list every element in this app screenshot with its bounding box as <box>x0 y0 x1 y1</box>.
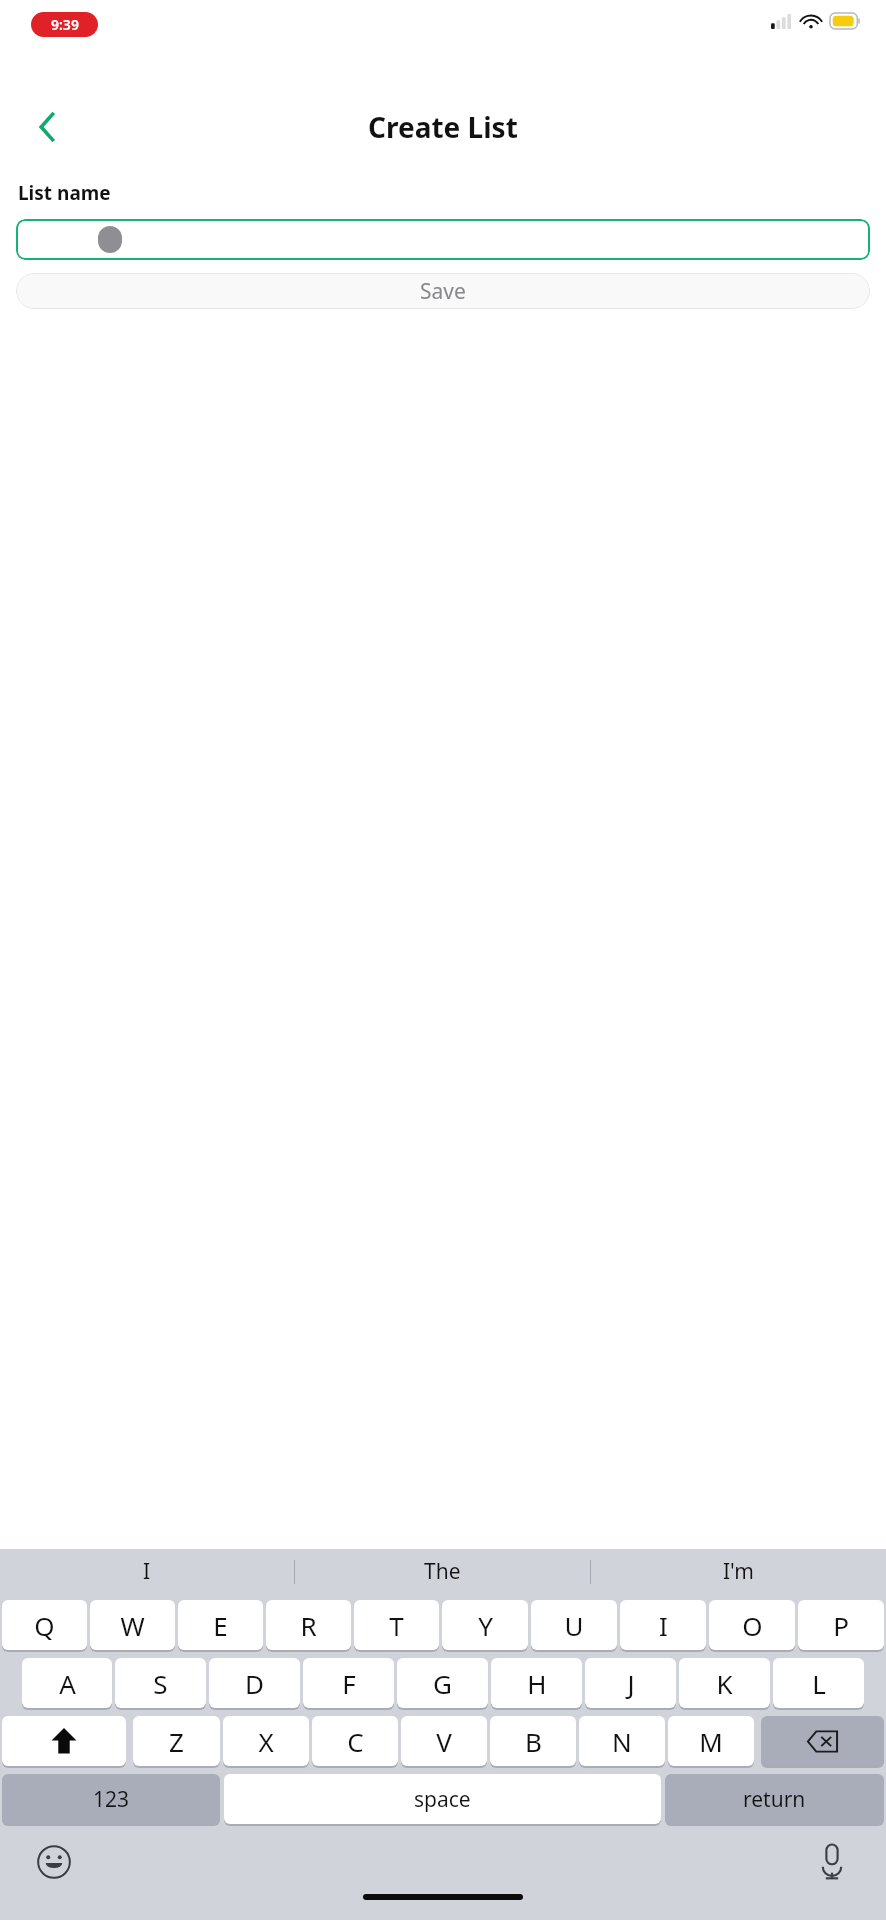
button[interactable]: Save <box>16 273 870 309</box>
button[interactable]: L <box>773 1658 864 1708</box>
staticText: I <box>143 1557 151 1586</box>
staticText: Save <box>420 277 466 306</box>
staticText: Q <box>34 1608 55 1643</box>
button[interactable]: B <box>490 1716 576 1766</box>
button[interactable]: F <box>303 1658 394 1708</box>
staticText: E <box>213 1608 228 1643</box>
staticText: V <box>436 1724 452 1759</box>
button[interactable]: List name input <box>16 219 870 260</box>
button[interactable]: O <box>709 1600 795 1650</box>
staticText: D <box>245 1666 264 1701</box>
staticText: Y <box>478 1608 493 1643</box>
button[interactable]: H <box>491 1658 582 1708</box>
staticText: space <box>414 1785 471 1814</box>
button[interactable]: R <box>266 1600 351 1650</box>
button[interactable]: I'm <box>591 1549 886 1594</box>
button[interactable]: P <box>798 1600 884 1650</box>
staticText: return <box>743 1785 806 1814</box>
button[interactable]: Y <box>442 1600 528 1650</box>
button[interactable]: 123 <box>2 1774 220 1824</box>
staticText: X <box>258 1724 274 1759</box>
button[interactable]: K <box>679 1658 770 1708</box>
staticText: The <box>424 1557 461 1586</box>
button[interactable]: T <box>354 1600 439 1650</box>
button[interactable]: M <box>668 1716 754 1766</box>
button[interactable]: return <box>665 1774 884 1824</box>
staticText: M <box>699 1724 723 1759</box>
button[interactable]: C <box>312 1716 398 1766</box>
staticText: I'm <box>723 1557 754 1586</box>
button[interactable]: Dictation <box>808 1838 856 1886</box>
button[interactable]: X <box>223 1716 309 1766</box>
staticText: S <box>153 1666 168 1701</box>
button[interactable]: Backspace <box>761 1716 884 1766</box>
button[interactable]: G <box>397 1658 488 1708</box>
staticText: B <box>525 1724 542 1759</box>
button[interactable]: Back <box>20 99 76 155</box>
button[interactable]: D <box>209 1658 300 1708</box>
button[interactable]: A <box>22 1658 112 1708</box>
staticText: O <box>742 1608 763 1643</box>
staticText: R <box>300 1608 317 1643</box>
staticText: Z <box>169 1724 184 1759</box>
staticText: Create List <box>368 108 518 146</box>
button[interactable]: Z <box>133 1716 220 1766</box>
staticText: G <box>433 1666 452 1701</box>
staticText: 9:39 <box>51 15 79 34</box>
button[interactable]: S <box>115 1658 206 1708</box>
staticText: 123 <box>93 1785 130 1814</box>
button[interactable]: I <box>620 1600 706 1650</box>
staticText: K <box>716 1666 733 1701</box>
staticText: List name <box>18 180 111 206</box>
button[interactable]: The <box>295 1549 590 1594</box>
button[interactable]: Emoji <box>30 1838 78 1886</box>
staticText: C <box>347 1724 364 1759</box>
button[interactable]: U <box>531 1600 617 1650</box>
button[interactable]: I <box>0 1549 294 1594</box>
staticText: I <box>659 1608 668 1643</box>
button[interactable]: space <box>224 1774 661 1824</box>
button[interactable]: E <box>178 1600 263 1650</box>
staticText: W <box>120 1608 145 1643</box>
staticText: H <box>527 1666 547 1701</box>
staticText: F <box>342 1666 356 1701</box>
button[interactable]: N <box>579 1716 665 1766</box>
staticText: N <box>612 1724 632 1759</box>
staticText: P <box>833 1608 849 1643</box>
staticText: T <box>389 1608 404 1643</box>
button[interactable]: J <box>585 1658 676 1708</box>
button[interactable]: V <box>401 1716 487 1766</box>
button[interactable]: W <box>90 1600 175 1650</box>
staticText: L <box>812 1666 826 1701</box>
button[interactable]: Shift <box>2 1716 126 1766</box>
staticText: J <box>627 1666 635 1701</box>
staticText: U <box>564 1608 584 1643</box>
button[interactable]: Q <box>2 1600 87 1650</box>
staticText: A <box>59 1666 76 1701</box>
